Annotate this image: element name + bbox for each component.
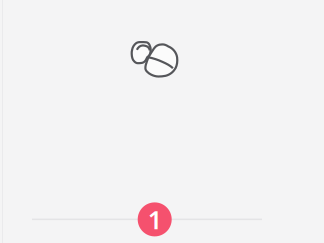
button[interactable]: Step 1 xyxy=(138,202,172,236)
staticText: 1 xyxy=(148,203,162,236)
